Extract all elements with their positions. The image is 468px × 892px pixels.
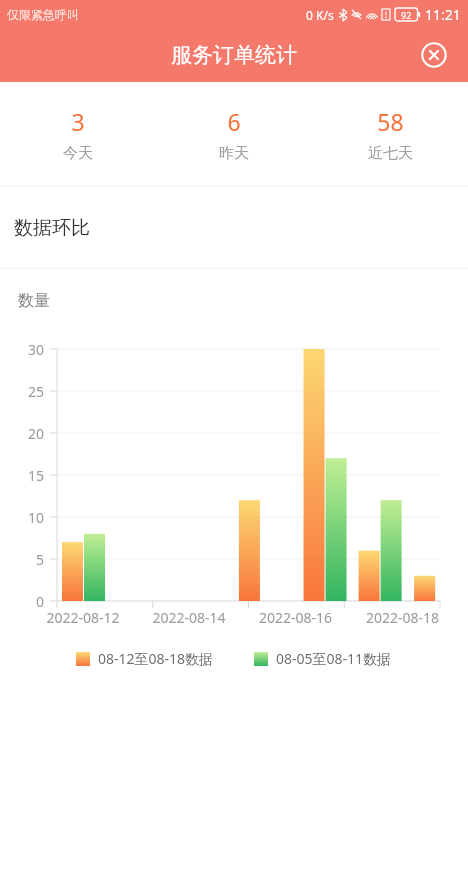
staticText: 25 [4,382,44,401]
staticText: 2022-08-14 [136,608,242,627]
staticText: 服务订单统计 [171,42,297,68]
staticText: 11:21 [425,5,461,24]
staticText: 92 [401,9,412,21]
staticText: 2022-08-12 [30,608,136,627]
staticText: 0 [4,592,44,611]
staticText: 20 [4,424,44,443]
staticText: 近七天 [368,144,413,163]
staticText: 数据环比 [14,216,90,240]
staticText: 30 [4,340,44,359]
staticText: 2022-08-16 [242,608,349,627]
staticText: 昨天 [219,144,249,163]
staticText: 5 [4,550,44,569]
staticText: 仅限紧急呼叫 [7,7,79,22]
button[interactable]: 数据环比 [0,187,468,268]
staticText: 2022-08-18 [349,608,456,627]
button[interactable]: 08-05至08-11数据 [254,649,392,668]
staticText: 今天 [63,144,93,163]
staticText: 58 [377,106,404,137]
button[interactable]: 58 [312,82,468,186]
button[interactable]: 08-12至08-18数据 [76,649,214,668]
staticText: 6 [227,106,241,137]
staticText: 0 K/s [306,7,334,23]
button[interactable]: Close [421,42,447,68]
staticText: 10 [4,508,44,527]
button[interactable]: 3 [0,82,156,186]
staticText: 3 [71,106,85,137]
staticText: 15 [4,466,44,485]
staticText: 08-05至08-11数据 [276,649,392,668]
staticText: 08-12至08-18数据 [98,649,214,668]
button[interactable]: 6 [156,82,312,186]
staticText: 数量 [18,291,50,311]
